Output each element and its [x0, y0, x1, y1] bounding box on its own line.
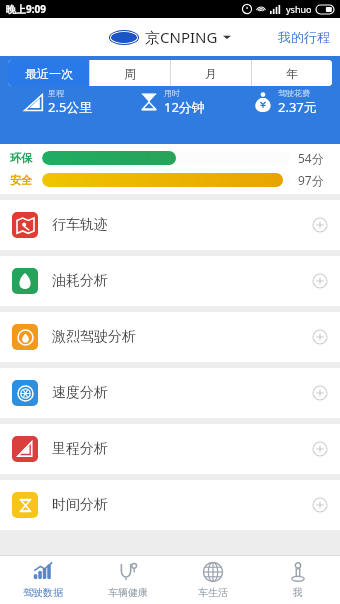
button[interactable]: 车生活: [170, 556, 255, 604]
staticText: 12分钟: [164, 98, 205, 116]
staticText: 驾驶花费: [278, 88, 310, 98]
button[interactable]: 驾驶数据: [0, 556, 85, 604]
button[interactable]: 行车轨迹: [0, 200, 340, 250]
button[interactable]: 时间分析: [0, 480, 340, 530]
button[interactable]: 里程分析: [0, 424, 340, 474]
other: Add 行车轨迹: [312, 217, 328, 233]
staticText: 晚上9:09: [6, 2, 46, 16]
other: Add 油耗分析: [312, 273, 328, 289]
button[interactable]: 油耗分析: [0, 256, 340, 306]
button[interactable]: 我的行程: [268, 21, 340, 53]
button[interactable]: 年: [252, 60, 332, 86]
other: Add 速度分析: [312, 385, 328, 401]
other: Add 激烈驾驶分析: [312, 329, 328, 345]
staticText: 我的行程: [278, 29, 330, 45]
staticText: 速度分析: [52, 384, 108, 402]
other: Add 时间分析: [312, 497, 328, 513]
staticText: 我: [293, 586, 303, 599]
button[interactable]: 最近一次: [8, 60, 89, 86]
staticText: 京CNPING: [145, 27, 218, 47]
staticText: 里程: [48, 88, 64, 98]
staticText: 2.37元: [278, 98, 317, 116]
staticText: 行车轨迹: [52, 216, 108, 234]
staticText: 用时: [164, 88, 180, 98]
staticText: 54分: [298, 150, 330, 166]
staticText: 油耗分析: [52, 272, 108, 290]
button[interactable]: 我: [255, 556, 340, 604]
staticText: 时间分析: [52, 496, 108, 514]
staticText: 最近一次: [25, 66, 73, 81]
staticText: 月: [205, 66, 217, 81]
other: Add 里程分析: [312, 441, 328, 457]
staticText: 10/23 19:41-10/23 19:53: [0, 70, 340, 82]
button[interactable]: 激烈驾驶分析: [0, 312, 340, 362]
staticText: 环保: [10, 151, 38, 165]
staticText: 车辆健康: [108, 586, 148, 599]
staticText: 车生活: [198, 586, 228, 599]
button[interactable]: 周: [90, 60, 170, 86]
staticText: 安全: [10, 173, 38, 187]
staticText: 驾驶数据: [23, 586, 63, 599]
staticText: 里程分析: [52, 440, 108, 458]
staticText: 周: [124, 66, 136, 81]
staticText: 激烈驾驶分析: [52, 328, 136, 346]
staticText: 年: [286, 66, 298, 81]
staticText: 97分: [298, 172, 330, 188]
button[interactable]: 速度分析: [0, 368, 340, 418]
staticText: yshuo: [286, 3, 312, 15]
button[interactable]: 月: [171, 60, 251, 86]
staticText: 2.5公里: [48, 98, 93, 116]
button[interactable]: 车辆健康: [85, 556, 170, 604]
